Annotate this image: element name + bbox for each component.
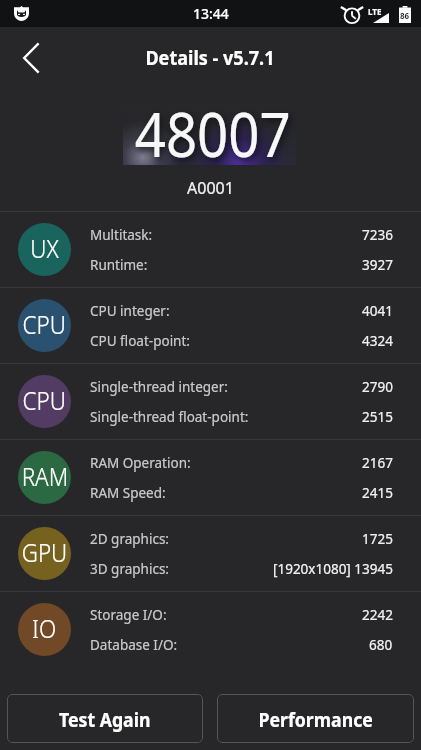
staticText: 1725 [362, 530, 393, 548]
staticText: 2515 [362, 408, 393, 426]
staticText: 3D graphics: [90, 560, 169, 578]
staticText: Single-thread integer: [90, 378, 228, 396]
staticText: 680 [369, 636, 393, 654]
staticText: 2167 [362, 454, 393, 472]
staticText: CPU [23, 382, 66, 417]
staticText: Details - v5.7.1 [145, 45, 275, 71]
staticText: LTE [368, 6, 382, 17]
staticText: CPU integer: [90, 302, 170, 320]
button[interactable]: CPU [0, 288, 421, 363]
button[interactable]: IO [0, 592, 421, 667]
staticText: 2415 [362, 484, 393, 502]
staticText: 13:44 [193, 4, 229, 23]
staticText: A0001 [187, 177, 234, 199]
staticText: Test Again [59, 706, 151, 733]
staticText: RAM Operation: [90, 454, 191, 472]
staticText: Performance [258, 706, 373, 733]
staticText: CPU float-point: [90, 332, 190, 350]
staticText: 4324 [362, 332, 393, 350]
staticText: UX [30, 230, 59, 265]
staticText: IO [32, 610, 57, 645]
button[interactable]: RAM [0, 440, 421, 515]
staticText: [1920x1080] 13945 [273, 560, 393, 578]
staticText: 7236 [362, 226, 393, 244]
staticText: 2D graphics: [90, 530, 169, 548]
staticText: Runtime: [90, 256, 148, 274]
staticText: Database I/O: [90, 636, 178, 654]
staticText: CPU [23, 306, 66, 341]
staticText: Single-thread float-point: [90, 408, 249, 426]
staticText: Multitask: [90, 226, 153, 244]
staticText: Storage I/O: [90, 606, 167, 624]
staticText: 2242 [362, 606, 393, 624]
button[interactable]: UX [0, 212, 421, 287]
staticText: 48007 [135, 91, 291, 175]
staticText: GPU [22, 534, 67, 569]
staticText: 4041 [362, 302, 393, 320]
staticText: RAM Speed: [90, 484, 166, 502]
button[interactable]: Test Again [7, 694, 203, 743]
staticText: 2790 [362, 378, 393, 396]
staticText: 86 [400, 10, 410, 21]
button[interactable]: Performance [217, 694, 414, 743]
button[interactable]: CPU [0, 364, 421, 439]
staticText: 3927 [362, 256, 393, 274]
staticText: RAM [22, 458, 67, 493]
button[interactable]: Back [0, 27, 62, 84]
button[interactable]: GPU [0, 516, 421, 591]
